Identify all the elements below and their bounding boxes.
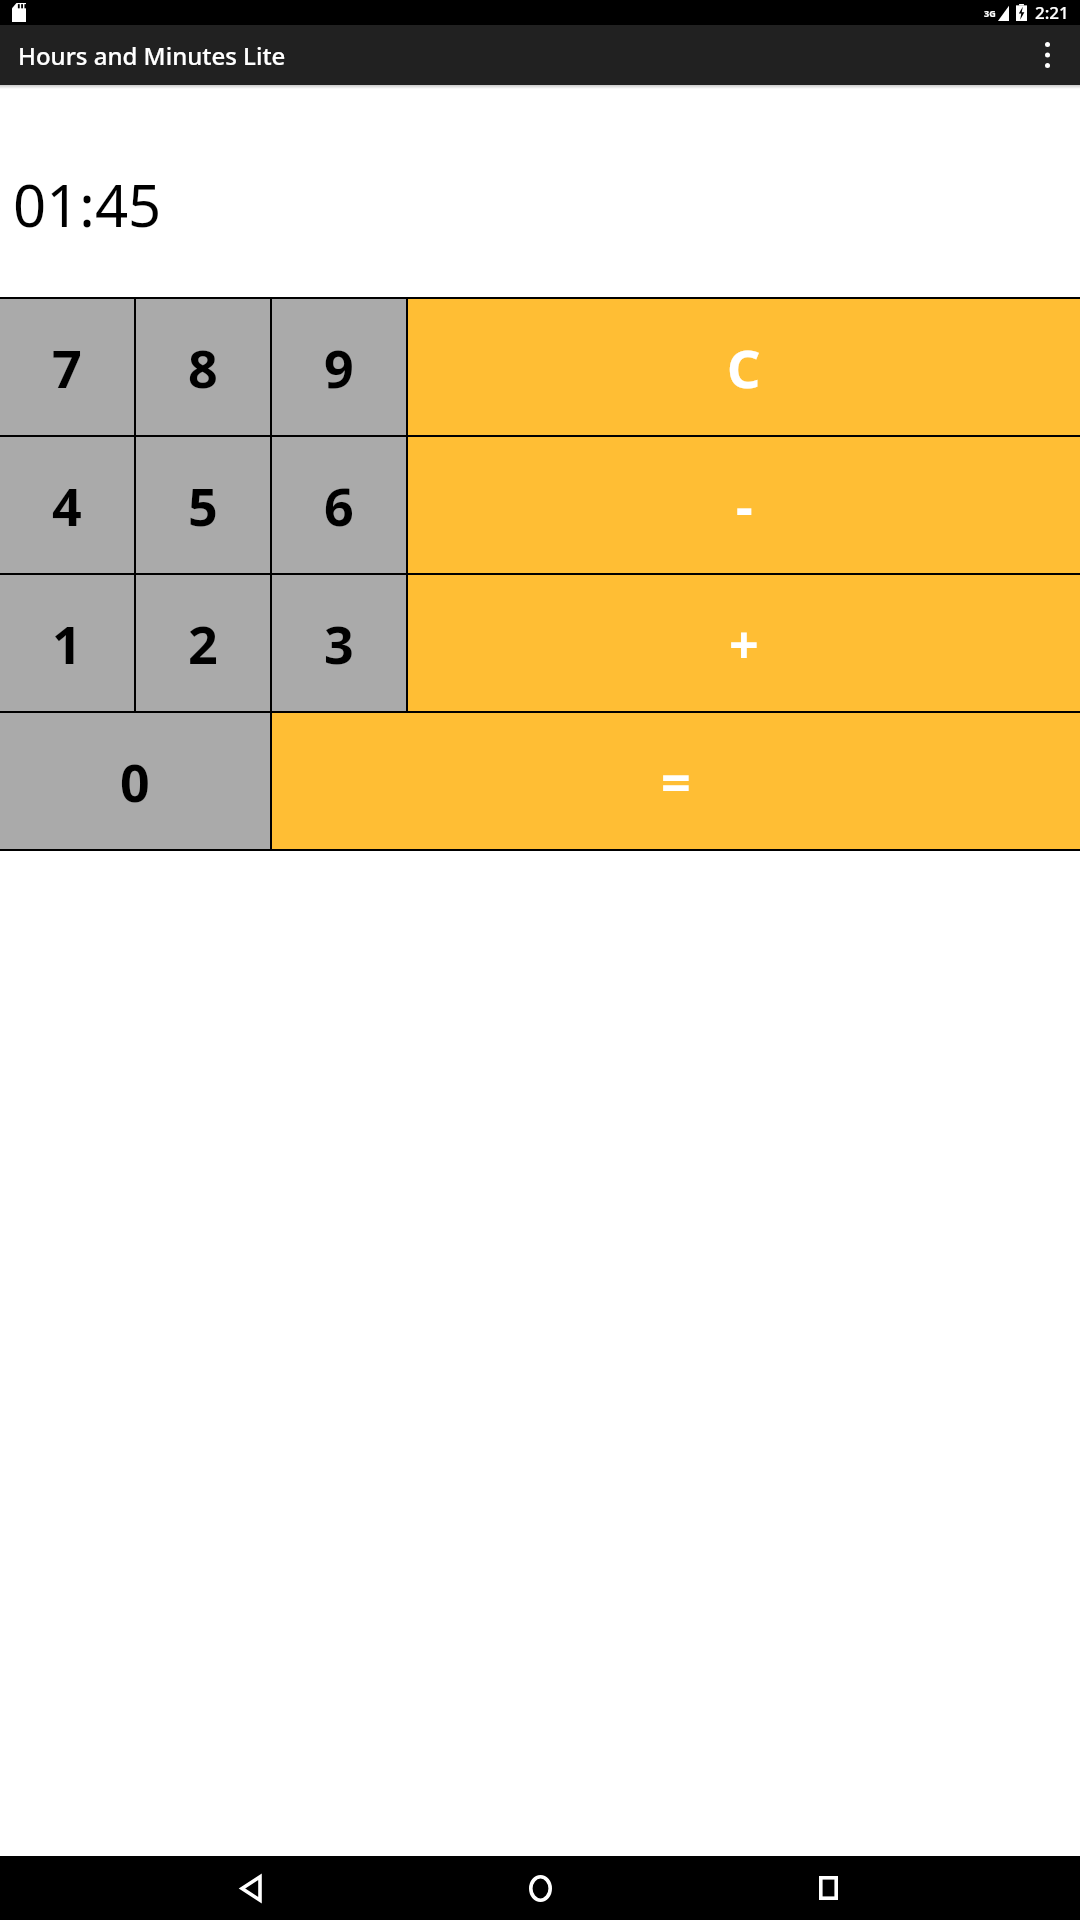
staticText: 5 xyxy=(188,470,218,541)
staticText: 7 xyxy=(52,332,82,403)
staticText: 3 xyxy=(324,608,354,679)
staticText: - xyxy=(736,470,753,541)
staticText: = xyxy=(661,746,691,817)
button[interactable]: C xyxy=(408,299,1080,435)
staticText: C xyxy=(727,332,761,403)
staticText: Hours and Minutes Lite xyxy=(18,39,286,72)
staticText: 01:45 xyxy=(13,165,162,244)
staticText: 4 xyxy=(52,470,82,541)
staticText: 1 xyxy=(52,608,82,679)
button[interactable]: 0 xyxy=(0,713,270,849)
button[interactable]: More options xyxy=(1023,31,1071,79)
button[interactable]: + xyxy=(408,575,1080,711)
button[interactable]: 8 xyxy=(136,299,270,435)
staticText: 2 xyxy=(188,608,218,679)
button[interactable]: 3 xyxy=(272,575,406,711)
button[interactable]: 9 xyxy=(272,299,406,435)
button[interactable]: 4 xyxy=(0,437,134,573)
button[interactable]: 1 xyxy=(0,575,134,711)
button[interactable]: = xyxy=(272,713,1080,849)
staticText: 9 xyxy=(324,332,354,403)
staticText: 3G xyxy=(984,7,996,19)
button[interactable]: - xyxy=(408,437,1080,573)
button[interactable]: 2 xyxy=(136,575,270,711)
button[interactable]: 6 xyxy=(272,437,406,573)
staticText: 8 xyxy=(188,332,218,403)
button[interactable]: Home xyxy=(504,1856,576,1920)
button[interactable]: Recents xyxy=(792,1856,864,1920)
staticText: + xyxy=(729,608,759,679)
staticText: 2:21 xyxy=(1035,1,1069,24)
button[interactable]: 5 xyxy=(136,437,270,573)
button[interactable]: 7 xyxy=(0,299,134,435)
staticText: 6 xyxy=(324,470,354,541)
staticText: 0 xyxy=(120,746,150,817)
button[interactable]: Back xyxy=(216,1856,288,1920)
